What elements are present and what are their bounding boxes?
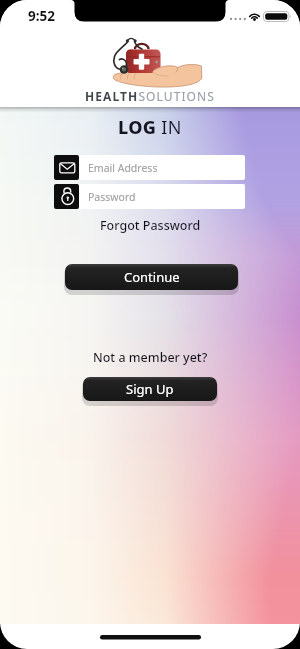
button[interactable]: Email Address (54, 155, 245, 180)
staticText: Not a member yet? (93, 349, 208, 366)
staticText: Password (88, 190, 136, 204)
button[interactable]: Password (54, 184, 245, 209)
staticText: Email Address (88, 161, 158, 175)
staticText: Continue (124, 268, 180, 286)
staticText: Sign Up (126, 380, 174, 398)
staticText: LOG IN (118, 115, 182, 140)
button[interactable]: Forgot Password (80, 217, 220, 233)
staticText: Forgot Password (100, 217, 201, 233)
staticText: 9:52 (28, 7, 55, 25)
button[interactable]: Continue (65, 264, 238, 290)
staticText: HEALTHSOLUTIONS (85, 88, 215, 104)
button[interactable]: Sign Up (83, 377, 217, 401)
